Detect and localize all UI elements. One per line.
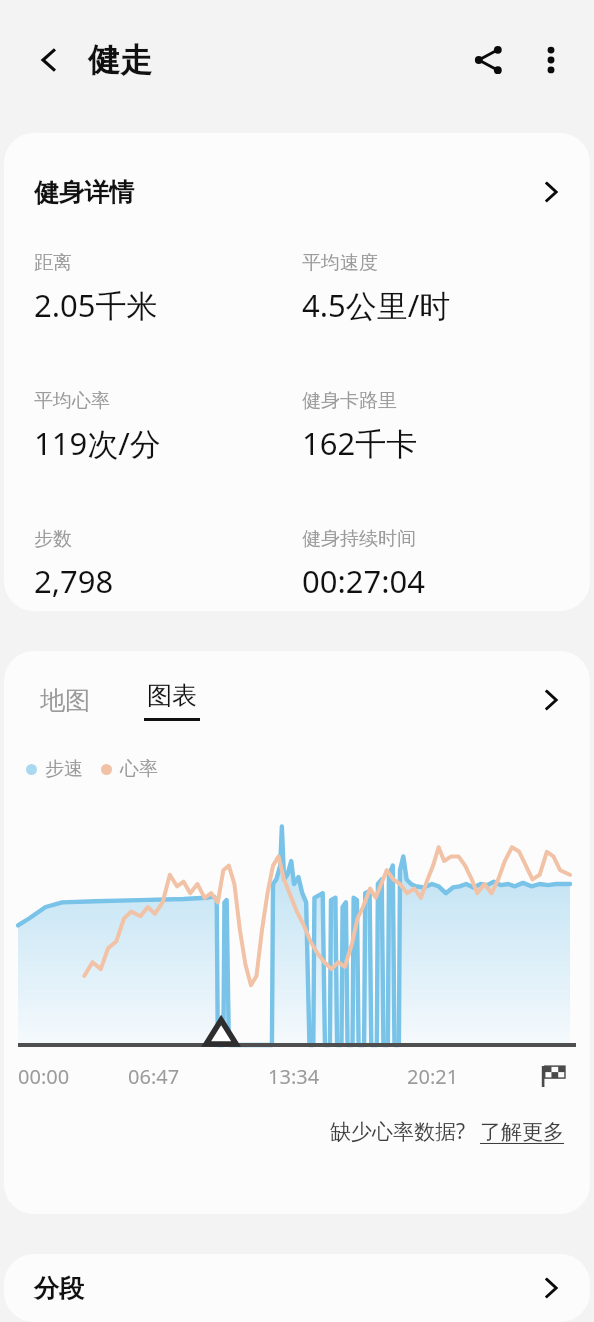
staticText: 心率 xyxy=(120,757,158,781)
staticText: 20:21 xyxy=(407,1063,459,1090)
staticText: 分段 xyxy=(34,1273,84,1304)
button[interactable]: 地图 xyxy=(34,677,96,724)
staticText: 13:34 xyxy=(268,1063,320,1090)
button[interactable]: 健身详情 xyxy=(4,133,590,251)
staticText: 162千卡 xyxy=(302,422,418,464)
staticText: 健身详情 xyxy=(34,177,134,208)
staticText: 地图 xyxy=(40,685,90,716)
staticText: 平均心率 xyxy=(34,389,110,413)
staticText: 距离 xyxy=(34,251,72,275)
staticText: 00:27:04 xyxy=(302,560,426,602)
staticText: 健身卡路里 xyxy=(302,389,397,413)
staticText: 2.05千米 xyxy=(34,284,158,326)
staticText: 步速 xyxy=(45,757,83,781)
staticText: 了解更多 xyxy=(480,1119,564,1145)
staticText: 图表 xyxy=(147,680,197,711)
button[interactable]: Back xyxy=(22,33,76,87)
staticText: 06:47 xyxy=(128,1063,180,1090)
staticText: 2,798 xyxy=(34,560,114,602)
staticText: 4.5公里/时 xyxy=(302,284,451,326)
button[interactable]: 了解更多 xyxy=(480,1119,564,1145)
staticText: 00:00 xyxy=(18,1063,70,1090)
button[interactable]: Share xyxy=(460,31,518,89)
button[interactable]: More options xyxy=(522,31,580,89)
button[interactable]: 图表 xyxy=(138,672,206,729)
button[interactable]: 分段 xyxy=(4,1254,590,1322)
staticText: 健走 xyxy=(88,40,152,80)
staticText: 步数 xyxy=(34,527,72,551)
staticText: 健身持续时间 xyxy=(302,527,416,551)
staticText: 119次/分 xyxy=(34,422,161,464)
staticText: 平均速度 xyxy=(302,251,378,275)
staticText: 缺少心率数据? xyxy=(330,1117,466,1146)
